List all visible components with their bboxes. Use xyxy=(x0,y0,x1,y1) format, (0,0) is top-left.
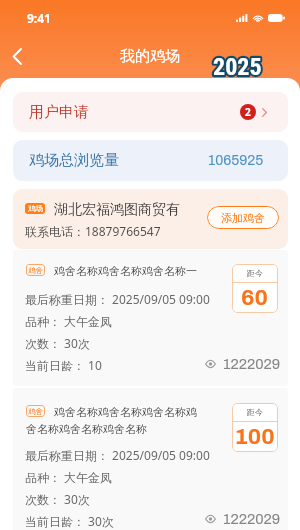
button[interactable]: 添加鸡舍 xyxy=(207,206,279,229)
button[interactable]: []鸡舍名称鸡舍名称鸡舍名称鸡舍名称鸡舍名称鸡舍名称 xyxy=(13,388,288,530)
staticText: 次数： 30次 xyxy=(25,491,90,507)
staticText: []鸡舍名称鸡舍名称鸡舍名称鸡舍名称鸡舍名称鸡舍名称 xyxy=(26,405,202,436)
button[interactable]: 用户申请 xyxy=(13,92,288,132)
staticText: 鸡场总浏览量 xyxy=(29,151,119,170)
staticText: 最后称重日期： 2025/09/05 09:00 xyxy=(25,447,210,463)
staticText: 次数： 30次 xyxy=(25,335,90,351)
button[interactable]: 鸡场 xyxy=(13,189,288,249)
staticText: 鸡舍 xyxy=(28,407,43,416)
staticText: 1222029 xyxy=(223,511,281,527)
staticText: 60 xyxy=(241,285,268,309)
staticText: 湖北宏福鸿图商贸有 xyxy=(54,201,180,219)
staticText: 最后称重日期： 2025/09/05 09:00 xyxy=(25,291,210,307)
staticText: 100 xyxy=(234,424,275,448)
staticText: 鸡场 xyxy=(28,204,43,213)
staticText: 当前日龄： 30次 xyxy=(25,513,114,529)
staticText: 我的鸡场 xyxy=(120,47,180,66)
staticText: 距今 xyxy=(247,268,263,278)
staticText: 2025 xyxy=(213,53,262,81)
staticText: 2025 xyxy=(213,53,262,81)
button[interactable]: 鸡场总浏览量 xyxy=(13,140,288,181)
staticText: 9:41 xyxy=(27,10,51,26)
staticText: 1065925 xyxy=(208,153,264,168)
staticText: []鸡舍名称鸡舍名称鸡舍名称一 xyxy=(26,264,202,278)
staticText: 品种： 大午金凤 xyxy=(25,469,113,485)
button[interactable]: Back xyxy=(2,40,34,72)
staticText: 鸡舍 xyxy=(28,266,43,275)
staticText: 当前日龄： 10 xyxy=(25,357,102,373)
staticText: 联系电话：18879766547 xyxy=(25,223,161,239)
staticText: 2 xyxy=(245,105,251,119)
staticText: 1222029 xyxy=(223,356,281,372)
staticText: 添加鸡舍 xyxy=(221,211,265,225)
staticText: 用户申请 xyxy=(29,103,89,122)
staticText: 距今 xyxy=(247,407,263,417)
staticText: 品种： 大午金凤 xyxy=(25,313,113,329)
button[interactable]: []鸡舍名称鸡舍名称鸡舍名称一 xyxy=(13,250,288,386)
